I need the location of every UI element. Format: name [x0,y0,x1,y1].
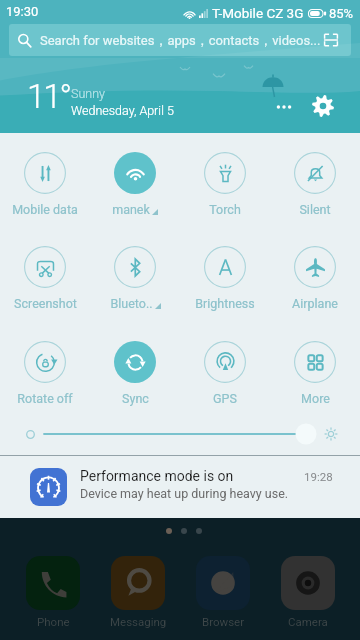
staticText: 19:28 [304,470,333,483]
staticText: Airplane [292,296,338,311]
button[interactable]: Performance mode is on [0,456,360,518]
staticText: Rotate off [17,391,73,406]
button[interactable]: Torch [180,152,270,217]
staticText: Brightness [195,296,255,311]
button[interactable]: Brightness slider [26,422,338,446]
button[interactable]: More options [268,91,300,123]
button[interactable]: manek [90,152,180,217]
staticText: Device may heat up during heavy use. [80,486,289,501]
button[interactable]: Phone [13,556,93,628]
staticText: manek [112,202,150,217]
staticText: Mobile data [12,202,78,217]
staticText: Silent [299,202,331,217]
button[interactable]: Mobile data [0,152,90,217]
staticText: Sync [122,391,149,406]
button[interactable]: More [270,341,360,406]
button[interactable]: GPS [180,341,270,406]
staticText: Performance mode is on [80,468,234,484]
button[interactable]: 11° [0,58,360,133]
button[interactable]: Blueto.. [90,246,180,311]
staticText: Blueto.. [110,296,153,311]
staticText: Search for websites，apps，contacts，videos… [40,32,321,48]
staticText: More [301,391,330,406]
staticText: 19:30 [6,4,39,19]
staticText: Wednesday, April 5 [71,103,174,118]
button[interactable]: Browser [183,556,263,628]
button[interactable]: Sync [90,341,180,406]
button[interactable]: Camera [268,556,348,628]
button[interactable]: Rotate off [0,341,90,406]
button[interactable]: Brightness [180,246,270,311]
staticText: Torch [209,202,241,217]
button[interactable]: Screenshot [0,246,90,311]
button[interactable]: Messaging [98,556,178,628]
staticText: Messaging [110,615,167,628]
staticText: Phone [37,615,70,628]
staticText: Sunny [71,86,105,101]
staticText: GPS [213,391,237,406]
staticText: 85% [329,6,354,21]
staticText: Screenshot [14,296,77,311]
staticText: T-Mobile CZ 3G [212,5,304,21]
staticText: Browser [202,615,245,628]
button[interactable]: Airplane [270,246,360,311]
button[interactable]: Silent [270,152,360,217]
staticText: Camera [288,615,328,628]
staticText: 11° [27,77,71,116]
button[interactable]: Search for websites，apps，contacts，videos… [9,24,351,56]
button[interactable]: Settings [306,89,340,123]
